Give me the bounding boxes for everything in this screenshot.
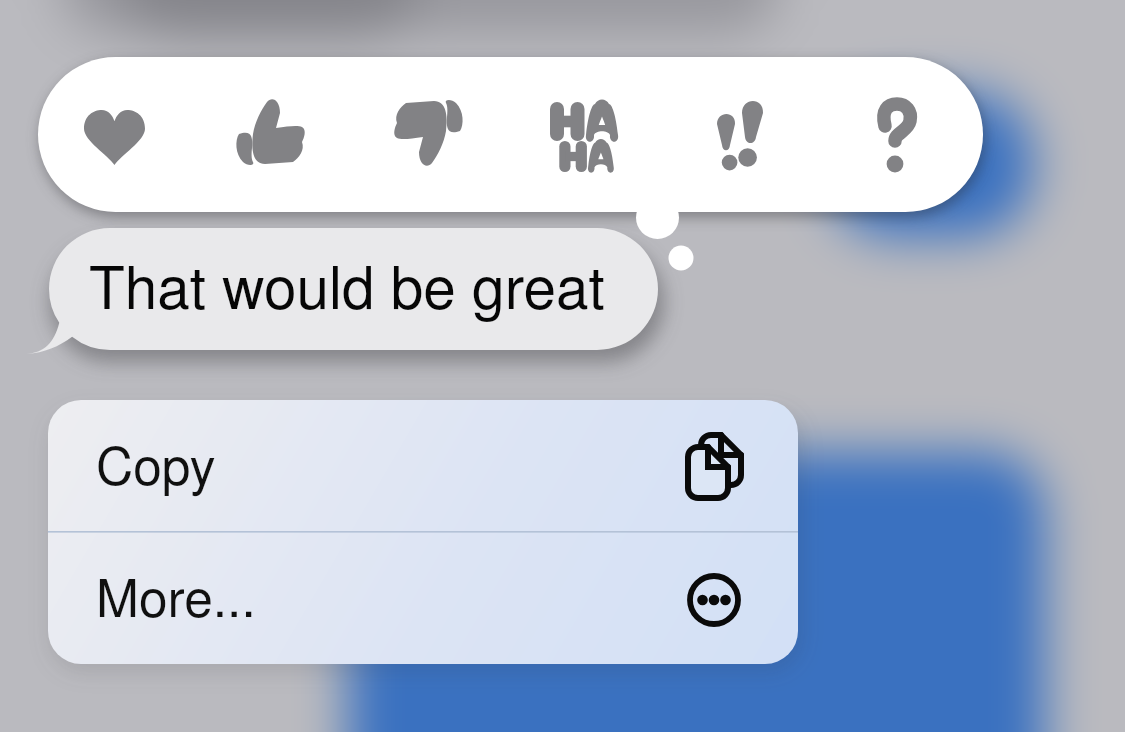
button[interactable]: That would be great bbox=[49, 228, 658, 350]
button[interactable]: Copy bbox=[48, 400, 798, 531]
button[interactable]: Emphasize bbox=[670, 57, 810, 212]
button[interactable]: More... bbox=[48, 532, 798, 664]
button[interactable]: Haha bbox=[514, 57, 654, 212]
button[interactable]: Question bbox=[827, 57, 967, 212]
button[interactable]: Like bbox=[201, 57, 341, 212]
button[interactable]: Dislike bbox=[357, 57, 497, 212]
button[interactable]: Love bbox=[44, 57, 184, 212]
